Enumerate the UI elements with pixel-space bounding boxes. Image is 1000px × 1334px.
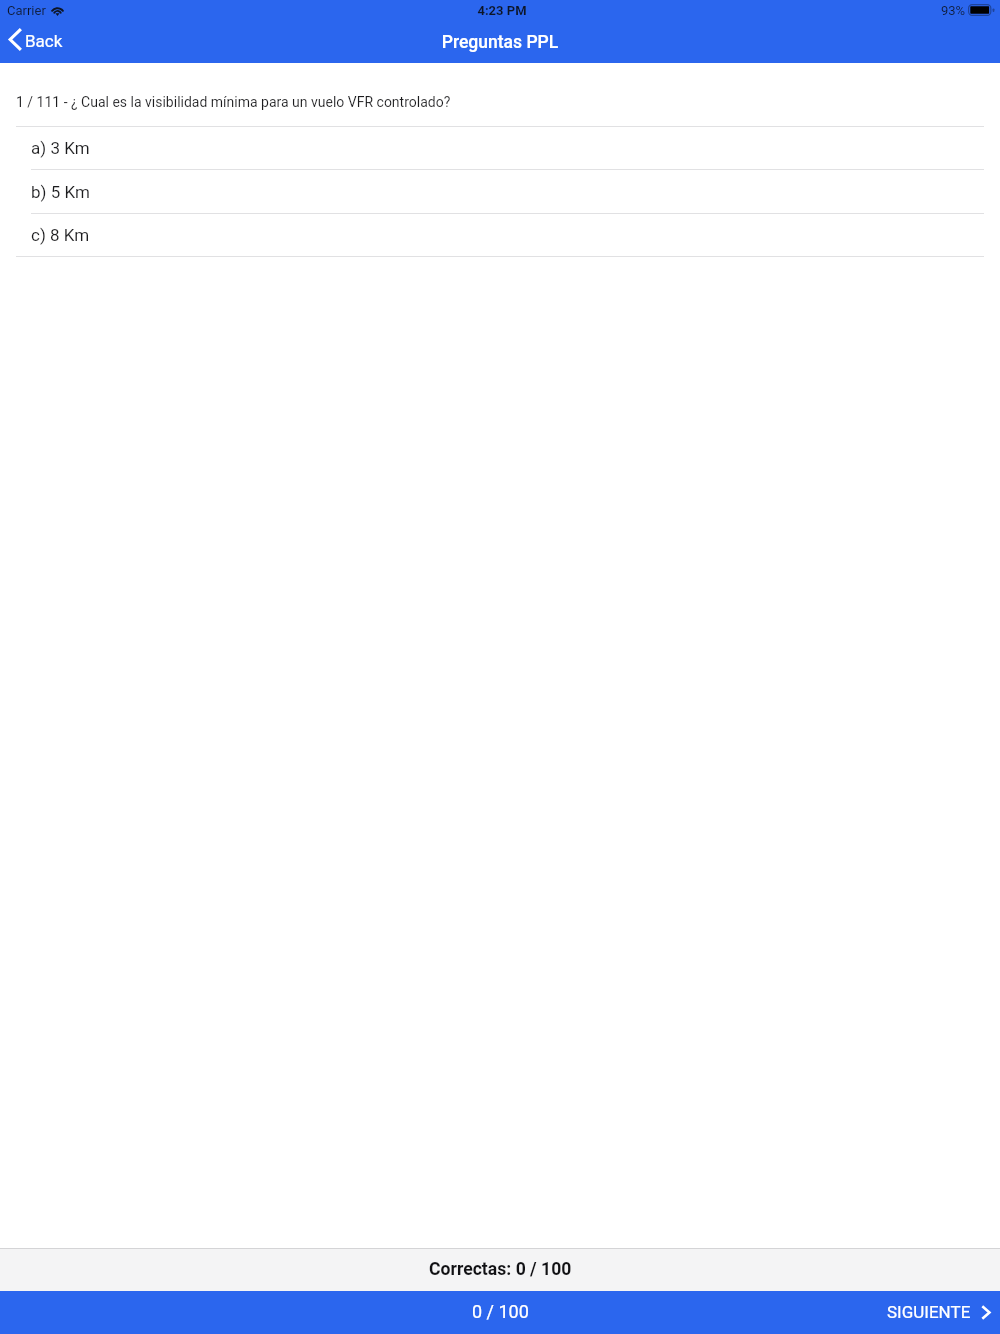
- staticText: Carrier: [7, 3, 46, 18]
- button[interactable]: c) 8 Km: [0, 214, 1000, 256]
- staticText: 1 / 111 - ¿ Cual es la visibilidad mínim…: [16, 94, 451, 110]
- button[interactable]: a) 3 Km: [0, 127, 1000, 169]
- button[interactable]: Back: [0, 23, 73, 56]
- button[interactable]: SIGUIENTE: [873, 1291, 1000, 1334]
- staticText: Back: [25, 31, 63, 51]
- staticText: Correctas: 0 / 100: [429, 1259, 572, 1280]
- staticText: 0 / 100: [472, 1301, 529, 1322]
- button[interactable]: b) 5 Km: [0, 170, 1000, 213]
- other: Wi-Fi: [50, 5, 65, 15]
- staticText: 93%: [941, 3, 966, 18]
- other: Battery: [968, 4, 995, 16]
- staticText: c) 8 Km: [31, 225, 90, 245]
- staticText: a) 3 Km: [31, 138, 90, 158]
- staticText: 4:23 PM: [2, 3, 1000, 18]
- staticText: b) 5 Km: [31, 182, 90, 202]
- staticText: Preguntas PPL: [0, 32, 1000, 53]
- staticText: SIGUIENTE: [887, 1302, 971, 1322]
